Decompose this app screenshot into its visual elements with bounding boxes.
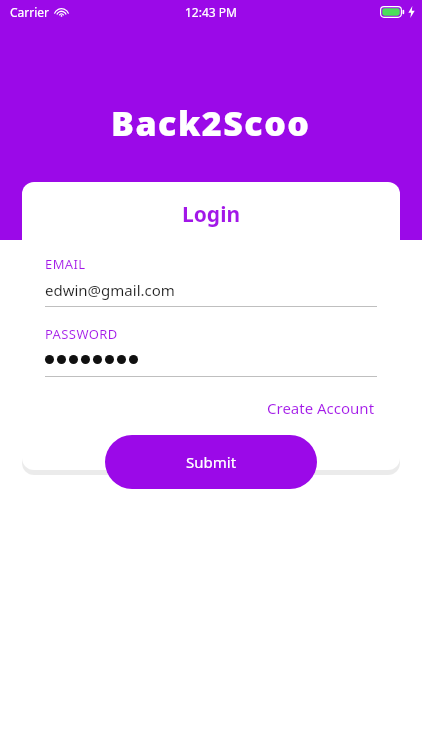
- staticText: Carrier: [10, 4, 50, 20]
- button[interactable]: Create Account: [265, 395, 377, 421]
- staticText: Create Account: [267, 398, 375, 418]
- staticText: Back2Scoo: [111, 100, 311, 146]
- staticText: Submit: [186, 452, 237, 472]
- staticText: PASSWORD: [45, 325, 118, 343]
- staticText: Login: [182, 200, 241, 229]
- staticText: EMAIL: [45, 255, 86, 273]
- staticText: 12:43 PM: [185, 4, 237, 20]
- button[interactable]: Submit: [105, 435, 317, 489]
- staticText: edwin@gmail.com: [45, 280, 175, 300]
